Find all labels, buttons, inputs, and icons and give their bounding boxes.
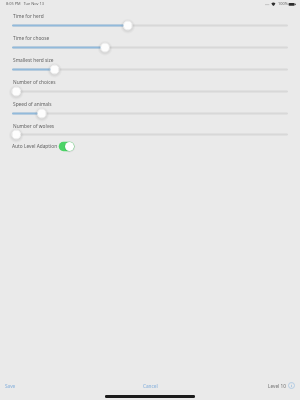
staticText: Time for choose [13,35,50,42]
button[interactable]: Number of wolves [0,129,300,140]
staticText: Auto Level Adaption [12,143,58,150]
staticText: Smallest herd size [13,57,54,64]
staticText: Number of wolves [13,123,55,130]
button[interactable]: Time for herd [0,20,300,31]
button[interactable]: Smallest herd size [0,64,300,75]
staticText: Level 10 [268,383,286,389]
button[interactable]: Speed of animals [0,108,300,119]
button[interactable]: Save [5,383,16,389]
button[interactable]: Level 10 [268,382,295,389]
staticText: Speed of animals [13,101,52,108]
button[interactable]: Time for choose [0,42,300,53]
button[interactable]: Number of choices [0,86,300,97]
staticText: Number of choices [13,79,56,86]
button[interactable]: Auto Level Adaption toggle [58,141,75,152]
staticText: Time for herd [13,13,44,20]
button[interactable]: Cancel [143,383,158,389]
staticText: 100% [278,1,288,6]
staticText: 8:05 PM Tue Nov 13 [6,1,44,6]
